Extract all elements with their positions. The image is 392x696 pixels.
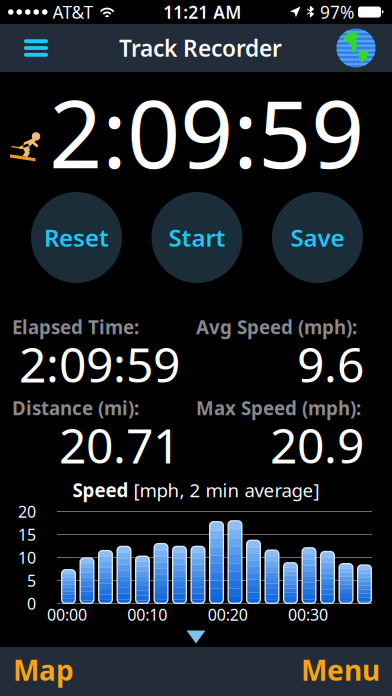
staticText: 20.71 xyxy=(59,413,180,477)
staticText: 20.9 xyxy=(270,413,364,477)
staticText: 00:10 xyxy=(127,604,167,625)
staticText: [mph, 2 min average] xyxy=(128,478,319,502)
staticText: 5 xyxy=(27,570,36,591)
staticText: 2:09:59 xyxy=(49,70,364,194)
staticText: 9.6 xyxy=(297,332,364,396)
staticText: 20 xyxy=(18,501,36,522)
staticText: 11:21 AM xyxy=(163,0,241,23)
staticText: Reset xyxy=(44,222,109,253)
staticText: 97% xyxy=(320,0,354,23)
staticText: 15 xyxy=(18,524,36,545)
staticText: Track Recorder xyxy=(119,33,282,63)
staticText: AT&T xyxy=(52,0,93,23)
staticText: 0 xyxy=(27,593,36,614)
staticText: Menu xyxy=(301,651,380,689)
staticText: 00:30 xyxy=(288,604,328,625)
button[interactable]: Reset xyxy=(31,192,122,283)
staticText: Avg Speed (mph): xyxy=(196,315,357,339)
staticText: Save xyxy=(290,222,344,253)
button[interactable]: Map view xyxy=(332,24,380,72)
staticText: Elapsed Time: xyxy=(12,315,139,339)
staticText: Max Speed (mph): xyxy=(196,396,361,420)
staticText: 00:20 xyxy=(208,604,248,625)
staticText: 2:09:59 xyxy=(19,332,180,396)
button[interactable]: Save xyxy=(272,192,363,283)
button[interactable]: Collapse xyxy=(0,627,392,647)
staticText: Distance (mi): xyxy=(12,396,139,420)
staticText: Map xyxy=(13,651,74,689)
staticText: Speed xyxy=(72,478,128,502)
staticText: Start xyxy=(168,222,225,253)
staticText: 00:00 xyxy=(47,604,87,625)
button[interactable]: Map xyxy=(0,647,87,696)
button[interactable]: Menu xyxy=(289,647,392,696)
button[interactable]: Menu xyxy=(12,24,60,72)
button[interactable]: Start xyxy=(151,192,242,283)
staticText: 10 xyxy=(18,547,36,568)
